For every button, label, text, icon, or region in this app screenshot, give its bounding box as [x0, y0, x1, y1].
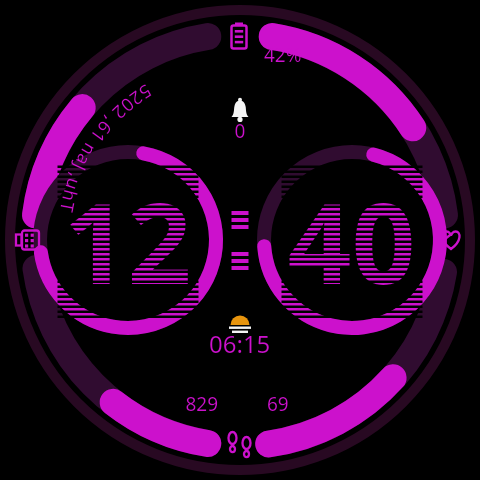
button[interactable]: Watch face	[0, 0, 480, 480]
